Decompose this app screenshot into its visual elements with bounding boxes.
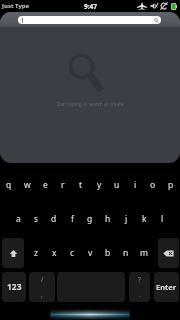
staticText: w (24, 179, 31, 191)
button[interactable]: i (126, 168, 144, 202)
button[interactable]: s (27, 202, 45, 236)
button[interactable]: x (45, 236, 63, 270)
other: Airplane mode (137, 2, 147, 10)
button[interactable]: f (63, 202, 81, 236)
staticText: e (43, 179, 48, 191)
button[interactable]: l (153, 202, 171, 236)
button[interactable]: w (18, 168, 36, 202)
button[interactable]: h (99, 202, 117, 236)
button[interactable]: p (162, 168, 180, 202)
button[interactable]: k (135, 202, 153, 236)
button[interactable]: r (54, 168, 72, 202)
staticText: v (88, 247, 93, 259)
button[interactable]: 123 (2, 272, 26, 302)
staticText: o (150, 179, 156, 191)
button[interactable]: u (108, 168, 126, 202)
staticText: y (97, 179, 102, 191)
staticText: q (6, 179, 12, 191)
button[interactable]: e (36, 168, 54, 202)
button[interactable]: t (72, 168, 90, 202)
staticText: z (34, 247, 38, 259)
button[interactable]: b (99, 236, 117, 270)
staticText: h (105, 213, 111, 225)
staticText: m (140, 247, 148, 259)
button[interactable]: z (27, 236, 45, 270)
button[interactable]: c (63, 236, 81, 270)
other: Rotation locked (160, 2, 168, 10)
button[interactable]: ? (129, 272, 150, 302)
staticText: u (114, 179, 120, 191)
staticText: Enter (156, 282, 177, 292)
staticText: p (168, 179, 174, 191)
staticText: 123 (7, 281, 22, 293)
staticText: b (105, 247, 111, 259)
staticText: Start typing to search or create (0, 101, 180, 107)
other: Battery (171, 3, 177, 10)
staticText: i (134, 179, 137, 191)
staticText: ? (138, 275, 141, 284)
staticText: r (61, 179, 65, 191)
staticText: n (123, 247, 129, 259)
button[interactable]: j (117, 202, 135, 236)
staticText: g (87, 213, 93, 225)
staticText: . (139, 290, 141, 299)
staticText: / (41, 275, 44, 284)
staticText: c (70, 247, 75, 259)
button[interactable]: v (81, 236, 99, 270)
staticText: x (52, 247, 57, 259)
button[interactable]: y (90, 168, 108, 202)
staticText: d (51, 213, 57, 225)
button[interactable]: o (144, 168, 162, 202)
button[interactable]: Shift (2, 238, 24, 268)
staticText: s (34, 213, 39, 225)
button[interactable]: Enter (154, 272, 179, 302)
button[interactable]: / (29, 272, 55, 302)
button[interactable]: Search field (18, 16, 161, 24)
staticText: Just Type (2, 2, 30, 10)
button[interactable]: g (81, 202, 99, 236)
button[interactable]: Backspace (158, 238, 179, 268)
button[interactable]: a (9, 202, 27, 236)
other: Sound off (150, 2, 158, 10)
staticText: a (16, 213, 21, 225)
staticText: f (71, 213, 74, 225)
button[interactable]: q (0, 168, 18, 202)
staticText: t (79, 179, 83, 191)
button[interactable]: n (117, 236, 135, 270)
staticText: l (161, 213, 164, 225)
button[interactable]: d (45, 202, 63, 236)
staticText: k (142, 213, 147, 225)
staticText: j (125, 213, 128, 225)
staticText: , (41, 290, 43, 299)
staticText: 9:47 (84, 2, 97, 11)
button[interactable]: m (135, 236, 153, 270)
